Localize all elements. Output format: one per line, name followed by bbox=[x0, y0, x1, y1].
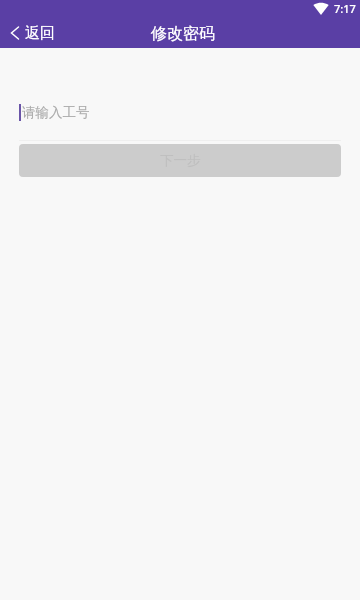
staticText: 下一步 bbox=[160, 152, 201, 169]
staticText: 请输入工号 bbox=[22, 104, 90, 121]
button[interactable]: 请输入工号 bbox=[0, 90, 360, 134]
button[interactable]: 返回 bbox=[0, 19, 79, 48]
other: Wi-Fi bbox=[313, 3, 329, 15]
staticText: 返回 bbox=[25, 24, 55, 43]
staticText: 修改密码 bbox=[151, 24, 215, 44]
staticText: 7:17 bbox=[334, 1, 356, 16]
